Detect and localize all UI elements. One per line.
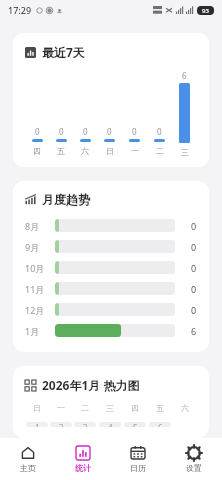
staticText: 5 — [133, 422, 138, 427]
staticText: 4 — [108, 422, 113, 427]
staticText: 二 — [156, 146, 164, 156]
staticText: 10月 — [25, 262, 45, 274]
staticText: 二 — [81, 403, 89, 413]
staticText: 五 — [57, 146, 65, 156]
staticText: 6 — [158, 422, 163, 427]
staticText: 9月 — [25, 241, 40, 253]
staticText: 12月 — [25, 304, 45, 316]
staticText: 三 — [181, 147, 189, 156]
staticText: 设置 — [186, 463, 202, 473]
staticText: 1月 — [25, 325, 40, 337]
staticText: 一 — [57, 403, 65, 413]
staticText: 主页 — [20, 463, 36, 473]
staticText: 一 — [131, 146, 139, 156]
staticText: 最近7天 — [42, 44, 85, 60]
staticText: 93 — [202, 7, 209, 15]
button[interactable]: 4 — [99, 422, 121, 427]
staticText: 3 — [83, 422, 88, 427]
staticText: 日 — [33, 403, 41, 413]
button[interactable]: 2 — [50, 422, 72, 427]
staticText: 6 — [182, 70, 187, 81]
staticText: 月度趋势 — [42, 192, 90, 207]
staticText: 0 — [191, 283, 197, 295]
staticText: 6 — [191, 325, 197, 337]
staticText: 0 — [157, 126, 162, 137]
button[interactable]: 6 — [149, 422, 171, 427]
staticText: 2026年1月 热力图 — [42, 377, 140, 393]
staticText: 17:29 — [8, 4, 32, 16]
staticText: 三 — [106, 403, 114, 413]
staticText: 五 — [156, 403, 164, 413]
staticText: 0 — [83, 126, 88, 137]
button[interactable]: 1 — [26, 422, 48, 427]
staticText: 日历 — [130, 463, 146, 473]
staticText: 0 — [191, 241, 197, 253]
button[interactable]: 主页 — [0, 438, 55, 480]
staticText: 0 — [107, 126, 112, 137]
button[interactable]: 统计 — [55, 438, 110, 480]
staticText: 0 — [35, 126, 40, 137]
button[interactable]: 3 — [74, 422, 96, 427]
staticText: 六 — [81, 146, 89, 156]
staticText: 1 — [35, 422, 40, 427]
staticText: 0 — [132, 126, 137, 137]
button[interactable]: 日历 — [110, 438, 166, 480]
staticText: 统计 — [75, 463, 91, 473]
staticText: 四 — [131, 403, 139, 413]
button[interactable]: 设置 — [166, 438, 222, 480]
staticText: 11月 — [25, 283, 45, 295]
staticText: 0 — [191, 220, 197, 232]
staticText: 2 — [59, 422, 64, 427]
staticText: 日 — [106, 146, 114, 156]
staticText: 8月 — [25, 220, 40, 232]
button[interactable]: 5 — [124, 422, 146, 427]
staticText: 0 — [191, 304, 197, 316]
staticText: 四 — [33, 146, 41, 156]
staticText: 0 — [59, 126, 64, 137]
staticText: 六 — [181, 403, 189, 413]
staticText: 0 — [191, 262, 197, 274]
